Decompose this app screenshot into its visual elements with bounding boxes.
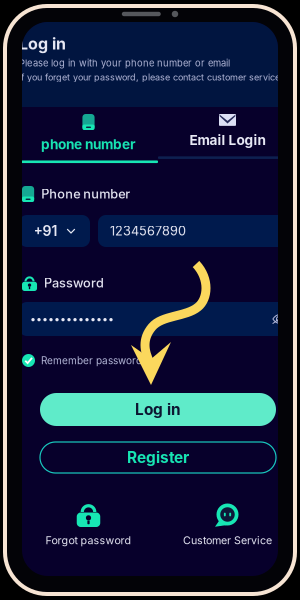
button[interactable]: Log in <box>40 393 276 426</box>
button[interactable]: Email Login <box>158 107 297 157</box>
button[interactable]: phone number <box>19 107 158 157</box>
staticText: If you forget your password, please cont… <box>19 72 280 83</box>
staticText: +91 <box>33 222 57 239</box>
button[interactable]: Show password <box>272 314 286 324</box>
staticText: phone number <box>41 136 136 152</box>
button[interactable]: Register <box>40 442 276 473</box>
button[interactable]: Remember password <box>19 354 297 367</box>
button[interactable]: Forgot password <box>19 502 158 547</box>
button[interactable]: +91 <box>19 215 90 247</box>
staticText: Log in <box>19 34 66 53</box>
staticText: Remember password <box>41 354 142 367</box>
staticText: Password <box>44 275 104 291</box>
staticText: Email Login <box>189 132 265 148</box>
staticText: Please log in with your phone number or … <box>19 57 230 69</box>
staticText: Log in <box>135 400 181 419</box>
button[interactable]: Customer Service <box>158 502 297 547</box>
staticText: Phone number <box>41 186 130 202</box>
staticText: Register <box>127 448 189 467</box>
staticText: Forgot password <box>45 534 131 547</box>
staticText: •••••••••••••• <box>30 312 114 325</box>
staticText: 1234567890 <box>110 223 186 239</box>
staticText: Customer Service <box>183 534 272 547</box>
